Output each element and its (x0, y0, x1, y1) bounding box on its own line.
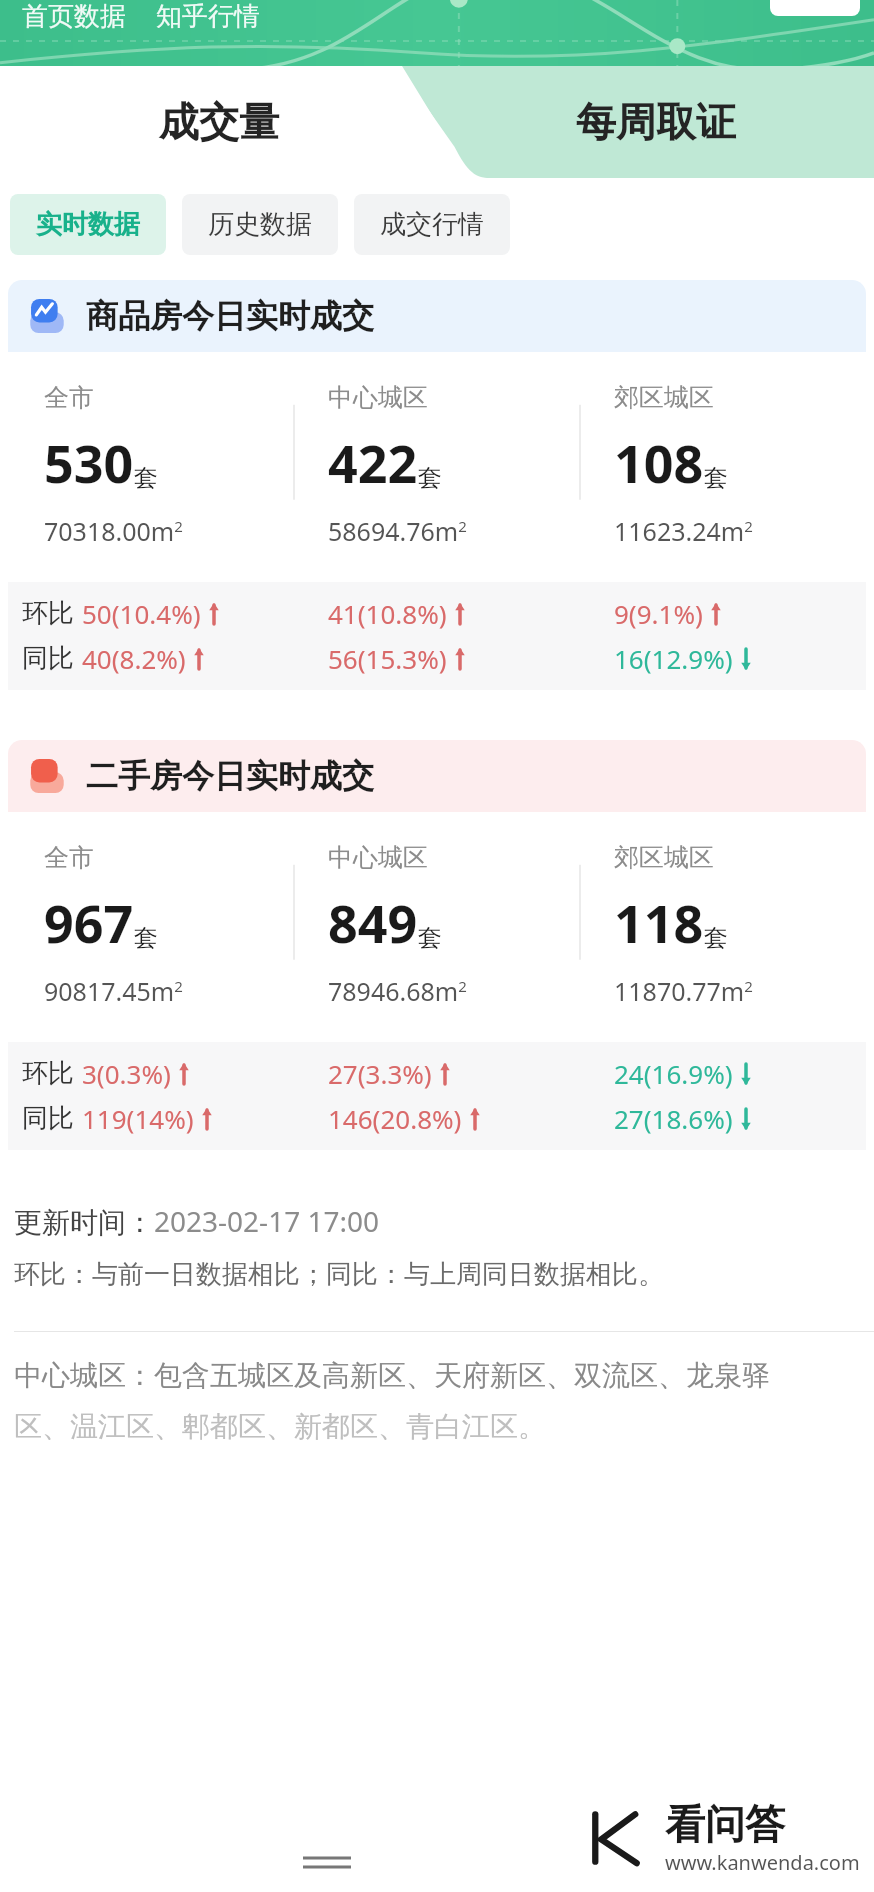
staticText: 70318.00m2 (44, 514, 183, 548)
staticText: 27(18.6%) (614, 1101, 733, 1136)
staticText: 3(0.3%) (82, 1056, 171, 1091)
button[interactable]: 二手房今日实时成交 (8, 740, 866, 1172)
staticText: 成交量 (159, 97, 279, 147)
staticText: 套 (418, 923, 442, 953)
staticText: 90817.45m2 (44, 974, 183, 1008)
staticText: 同比 (22, 1102, 74, 1135)
button[interactable]: 成交量 (0, 66, 437, 178)
staticText: 更新时间：2023-02-17 17:00 (14, 1202, 380, 1240)
staticText: 146(20.8%) (328, 1101, 462, 1136)
staticText: 全市 (44, 382, 94, 413)
button[interactable]: 实时数据 (10, 194, 166, 255)
staticText: 58694.76m2 (328, 514, 467, 548)
staticText: 商品房今日实时成交 (86, 296, 374, 336)
staticText: 环比 (22, 1057, 74, 1090)
staticText: 全市 (44, 842, 94, 873)
staticText: 套 (134, 463, 158, 493)
staticText: 967 (44, 887, 134, 958)
staticText: 二手房今日实时成交 (86, 756, 374, 796)
staticText: 郊区城区 (614, 842, 714, 873)
staticText: 24(16.9%) (614, 1056, 733, 1091)
staticText: 9(9.1%) (614, 596, 703, 631)
staticText: 27(3.3%) (328, 1056, 432, 1091)
staticText: 首页数据 (22, 0, 126, 33)
staticText: 78946.68m2 (328, 974, 467, 1008)
button[interactable]: 成交行情 (354, 194, 510, 255)
staticText: 108 (614, 427, 704, 498)
staticText: 区、温江区、郫都区、新都区、青白江区。 (14, 1409, 546, 1444)
staticText: 119(14%) (82, 1101, 194, 1136)
staticText: 530 (44, 427, 134, 498)
staticText: 中心城区 (328, 842, 428, 873)
staticText: 50(10.4%) (82, 596, 201, 631)
staticText: 中心城区 (328, 382, 428, 413)
button[interactable]: 历史数据 (182, 194, 338, 255)
staticText: 41(10.8%) (328, 596, 447, 631)
staticText: 422 (328, 427, 418, 498)
staticText: 套 (134, 923, 158, 953)
staticText: 套 (418, 463, 442, 493)
staticText: 成交行情 (380, 208, 484, 241)
staticText: 环比：与前一日数据相比；同比：与上周同日数据相比。 (14, 1258, 664, 1291)
staticText: www.kanwenda.com (665, 1849, 860, 1876)
staticText: 118 (614, 887, 704, 958)
button[interactable]: 商品房今日实时成交 (8, 280, 866, 712)
staticText: 16(12.9%) (614, 641, 733, 676)
staticText: 同比 (22, 642, 74, 675)
staticText: 环比 (22, 597, 74, 630)
staticText: 看问答 (665, 1799, 785, 1849)
staticText: 每周取证 (576, 97, 736, 147)
staticText: 实时数据 (36, 208, 140, 241)
staticText: 套 (704, 463, 728, 493)
staticText: 知乎行情 (156, 0, 260, 33)
staticText: 套 (704, 923, 728, 953)
staticText: 11870.77m2 (614, 974, 753, 1008)
staticText: 中心城区：包含五城区及高新区、天府新区、双流区、龙泉驿 (14, 1358, 770, 1393)
staticText: 56(15.3%) (328, 641, 447, 676)
staticText: 11623.24m2 (614, 514, 753, 548)
staticText: 849 (328, 887, 418, 958)
button[interactable]: 每周取证 (437, 66, 874, 178)
staticText: 历史数据 (208, 208, 312, 241)
staticText: 郊区城区 (614, 382, 714, 413)
staticText: 40(8.2%) (82, 641, 186, 676)
